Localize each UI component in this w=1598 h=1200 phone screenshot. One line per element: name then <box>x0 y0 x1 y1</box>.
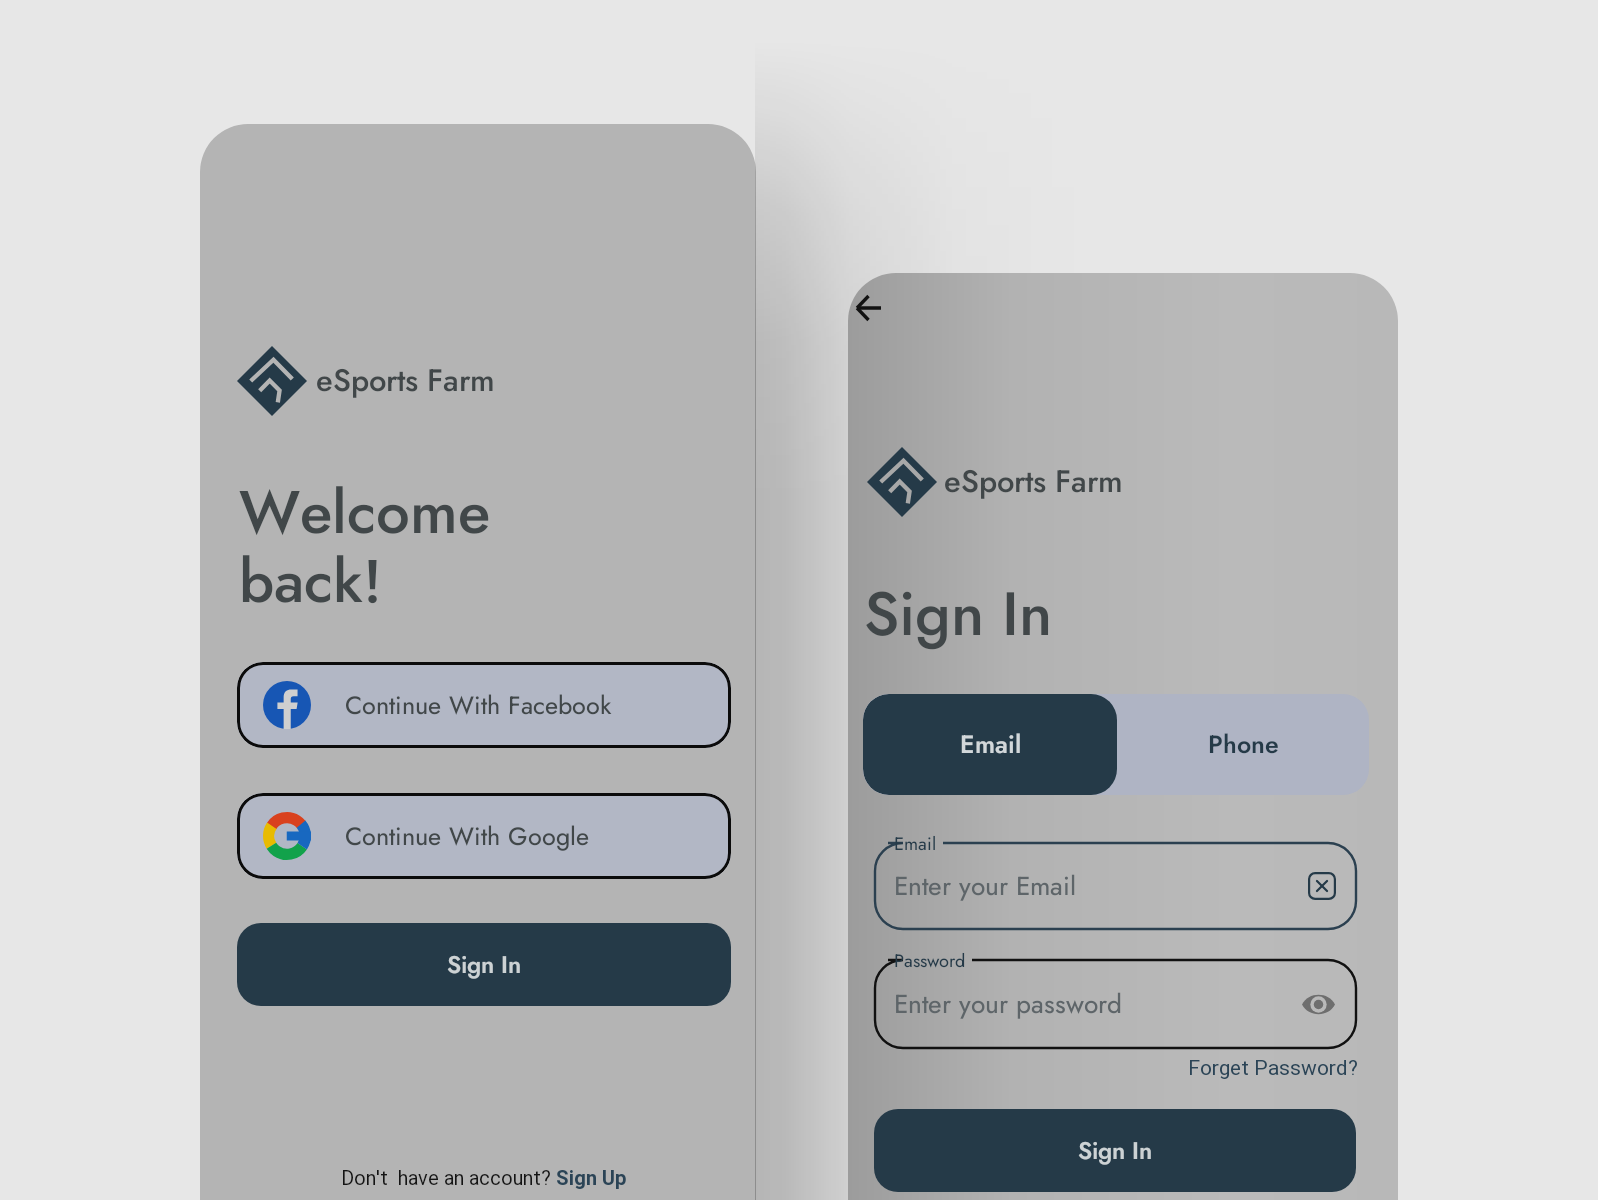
other: Forget Password? <box>1188 1060 1358 1081</box>
other: Sign In <box>1078 1142 1152 1166</box>
other: Email <box>960 735 1021 760</box>
button[interactable]: Don't have an account? Sign Up <box>341 1159 631 1185</box>
button[interactable]: Email <box>863 694 1117 795</box>
button[interactable]: Phone <box>1117 694 1369 795</box>
button[interactable]: Sign In <box>874 1109 1356 1192</box>
button[interactable]: Sign In <box>237 923 731 1006</box>
button[interactable]: Continue With Google <box>237 793 731 879</box>
other: Welcome back! <box>239 491 490 619</box>
other: Continue With Google <box>345 827 589 852</box>
other: Sign In <box>864 592 1052 652</box>
button[interactable]: Back <box>848 283 893 332</box>
button[interactable]: Forget Password? <box>1178 1053 1358 1093</box>
other: Phone <box>1208 735 1279 760</box>
button[interactable]: Clear text <box>1308 872 1336 900</box>
button[interactable]: Show password <box>1300 986 1336 1022</box>
other: Continue With Facebook <box>345 696 611 721</box>
button[interactable]: Continue With Facebook <box>237 662 731 748</box>
other: eSports Farm <box>944 470 1123 500</box>
other: Sign In <box>447 956 521 980</box>
other: eSports Farm <box>316 369 495 399</box>
